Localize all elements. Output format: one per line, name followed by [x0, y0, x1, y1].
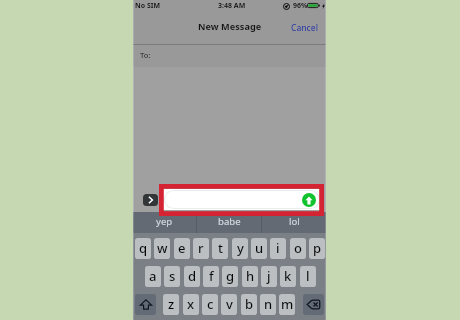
staticText: u [255, 239, 264, 257]
button[interactable]: j [261, 266, 277, 287]
staticText: d [188, 267, 197, 285]
button[interactable]: y [232, 238, 248, 259]
button[interactable]: Backspace [303, 294, 324, 315]
button[interactable]: e [174, 238, 190, 259]
button[interactable]: c [202, 294, 218, 315]
staticText: lol [289, 215, 300, 228]
button[interactable]: f [203, 266, 219, 287]
staticText: j [267, 267, 271, 285]
staticText: r [198, 239, 204, 257]
button[interactable]: Apps [143, 194, 158, 206]
button[interactable]: v [221, 294, 237, 315]
staticText: t [218, 239, 223, 257]
staticText: f [209, 267, 214, 285]
staticText: y [237, 239, 244, 257]
staticText: New Message [198, 20, 262, 33]
staticText: No SIM [135, 1, 161, 11]
button[interactable]: h [242, 266, 258, 287]
button[interactable]: m [279, 294, 295, 315]
button[interactable]: Cancel [283, 18, 326, 38]
button[interactable]: g [222, 266, 238, 287]
staticText: q [139, 239, 148, 257]
staticText: 96% [293, 1, 308, 11]
staticText: i [276, 239, 280, 257]
staticText: p [313, 239, 322, 257]
button[interactable]: x [183, 294, 199, 315]
staticText: k [284, 267, 292, 285]
staticText: z [168, 295, 175, 313]
staticText: l [306, 267, 310, 285]
staticText: e [178, 239, 186, 257]
button[interactable]: b [241, 294, 257, 315]
staticText: To: [140, 50, 151, 61]
button[interactable]: n [260, 294, 276, 315]
button[interactable]: z [163, 294, 179, 315]
staticText: b [245, 295, 254, 313]
button[interactable]: babe [197, 212, 261, 233]
button[interactable]: q [135, 238, 151, 259]
staticText: a [149, 267, 157, 285]
button[interactable]: Shift [135, 294, 156, 315]
button[interactable]: Message field [163, 189, 321, 210]
button[interactable]: u [251, 238, 267, 259]
staticText: w [157, 239, 168, 257]
button[interactable]: w [154, 238, 170, 259]
button[interactable]: l [300, 266, 316, 287]
button[interactable]: yep [133, 212, 196, 233]
button[interactable]: To recipients field [133, 45, 326, 67]
staticText: 3:48 AM [218, 1, 246, 11]
staticText: o [294, 239, 302, 257]
staticText: c [207, 295, 214, 313]
staticText: Cancel [291, 22, 318, 34]
staticText: n [264, 295, 273, 313]
button[interactable]: s [164, 266, 180, 287]
button[interactable]: r [193, 238, 209, 259]
staticText: x [187, 295, 195, 313]
staticText: yep [156, 215, 173, 228]
button[interactable]: lol [262, 212, 326, 233]
staticText: g [226, 267, 235, 285]
staticText: h [246, 267, 255, 285]
button[interactable]: i [270, 238, 286, 259]
staticText: s [169, 267, 176, 285]
staticText: babe [218, 215, 241, 228]
button[interactable]: t [212, 238, 228, 259]
button[interactable]: Send [302, 193, 316, 207]
button[interactable]: p [309, 238, 325, 259]
button[interactable]: o [290, 238, 306, 259]
staticText: v [226, 295, 233, 313]
staticText: m [281, 295, 294, 313]
button[interactable]: a [145, 266, 161, 287]
button[interactable]: k [280, 266, 296, 287]
button[interactable]: d [184, 266, 200, 287]
